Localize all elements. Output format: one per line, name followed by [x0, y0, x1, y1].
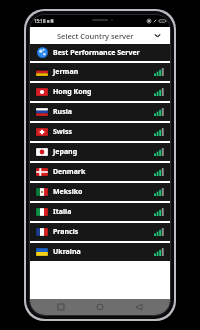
button[interactable]: Rusia	[30, 103, 170, 121]
staticText: Rusia	[53, 107, 154, 117]
button[interactable]: Jepang	[30, 143, 170, 161]
button[interactable]: Back	[131, 299, 147, 315]
staticText: Denmark	[53, 167, 154, 177]
staticText: 15:18	[34, 18, 46, 24]
button[interactable]: Italia	[30, 203, 170, 221]
staticText: Select Country server	[57, 31, 134, 41]
staticText: Meksiko	[53, 187, 154, 197]
staticText: Jerman	[53, 67, 154, 77]
button[interactable]: Meksiko	[30, 183, 170, 201]
staticText: Italia	[53, 207, 154, 217]
button[interactable]: Select Country server	[30, 27, 170, 44]
staticText: Jepang	[53, 147, 154, 157]
button[interactable]: Recent apps	[53, 299, 69, 315]
staticText: Hong Kong	[53, 87, 154, 97]
staticText: Swiss	[53, 127, 154, 137]
button[interactable]: Denmark	[30, 163, 170, 181]
staticText: Prancis	[53, 227, 154, 237]
button[interactable]: Hong Kong	[30, 83, 170, 101]
button[interactable]: Swiss	[30, 123, 170, 141]
staticText: Ukraina	[53, 247, 154, 257]
button[interactable]: Ukraina	[30, 243, 170, 261]
button[interactable]: Home	[92, 299, 108, 315]
button[interactable]: Best Performance Server	[30, 44, 170, 61]
button[interactable]: Prancis	[30, 223, 170, 241]
button[interactable]: Jerman	[30, 63, 170, 81]
other: Expand country list	[153, 31, 162, 40]
staticText: Best Performance Server	[53, 48, 140, 58]
